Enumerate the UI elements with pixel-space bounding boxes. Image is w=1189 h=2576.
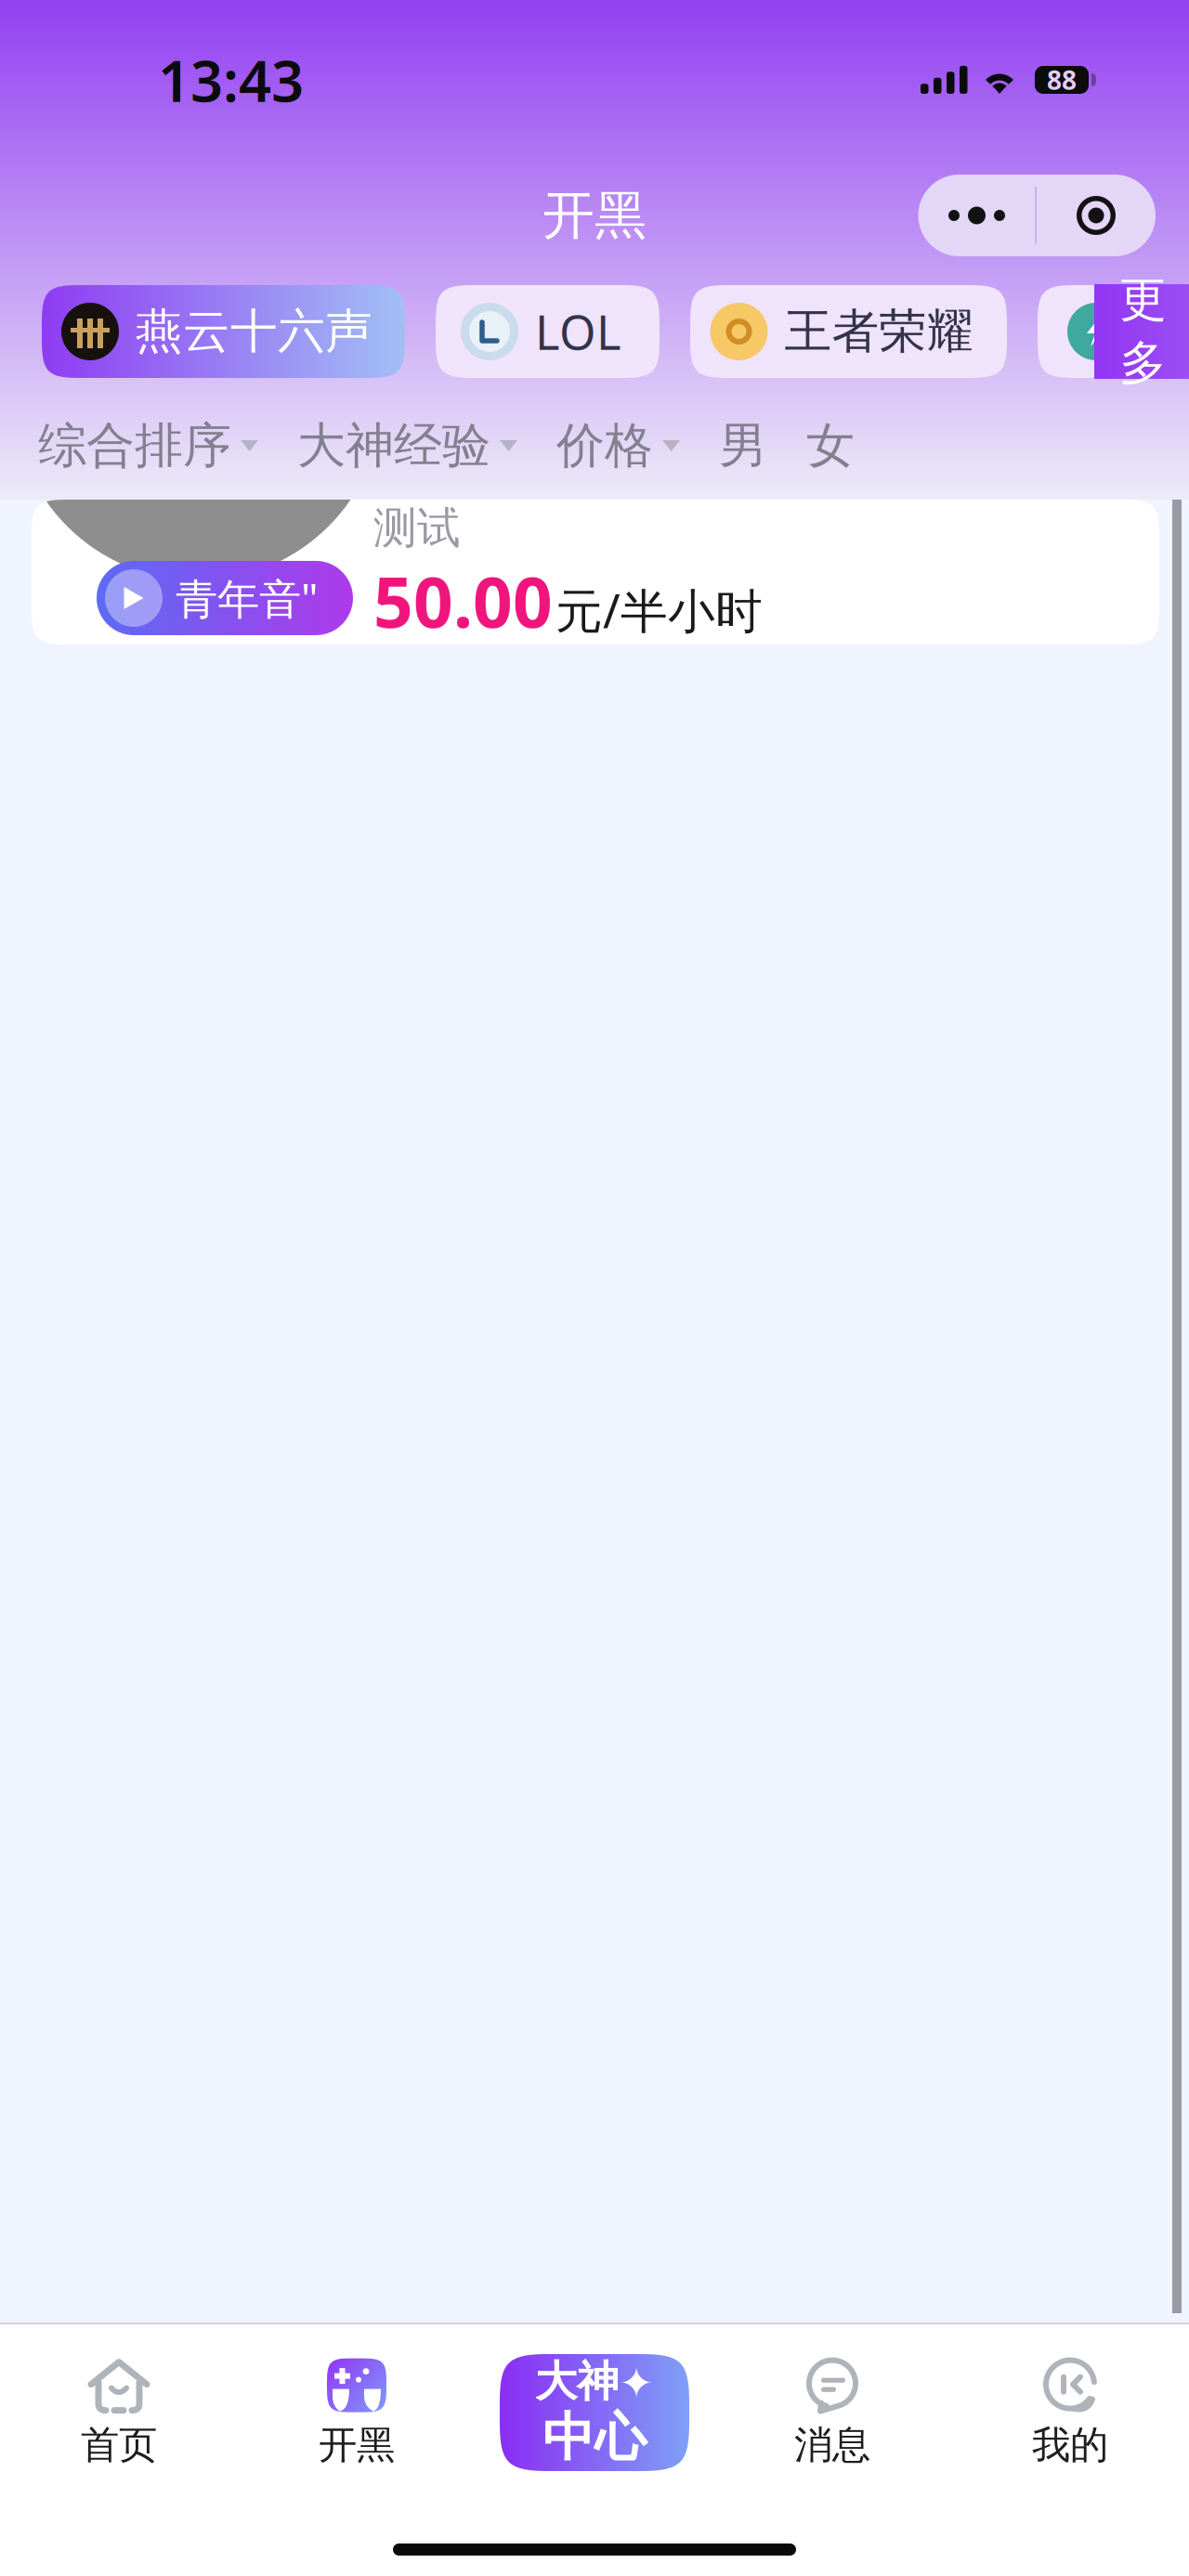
button[interactable] — [1038, 285, 1189, 378]
staticText: 消息 — [794, 2421, 870, 2469]
staticText: 青年音" — [176, 570, 318, 626]
staticText: 多 — [1119, 334, 1167, 392]
button[interactable]: 首页 — [0, 2343, 238, 2482]
staticText: 大神✦ — [535, 2356, 654, 2407]
button[interactable]: Close mini program — [1037, 175, 1156, 256]
button[interactable]: 价格 — [556, 418, 680, 474]
staticText: 大神经验 — [297, 416, 490, 475]
staticText: 我的 — [1032, 2421, 1108, 2469]
button[interactable]: 开黑 — [238, 2343, 476, 2482]
button[interactable]: 男 — [719, 418, 767, 474]
staticText: 中心 — [542, 2406, 647, 2469]
staticText: 综合排序 — [38, 416, 231, 475]
staticText: 测试 — [373, 501, 461, 555]
button[interactable]: 大神✦ — [476, 2343, 713, 2482]
staticText: 88 — [1047, 63, 1077, 97]
button[interactable]: 大神经验 — [297, 418, 517, 474]
staticText: 首页 — [81, 2421, 157, 2469]
staticText: 女 — [806, 416, 855, 475]
button[interactable]: 综合排序 — [38, 418, 258, 474]
staticText: 13:43 — [158, 42, 304, 118]
button[interactable]: LOL — [436, 285, 660, 378]
staticText: 王者荣耀 — [784, 303, 974, 360]
staticText: LOL — [535, 300, 621, 363]
button[interactable]: 更 — [1094, 284, 1189, 379]
button[interactable]: 我的 — [951, 2343, 1189, 2482]
button[interactable]: More options — [918, 175, 1035, 256]
staticText: 元/半小时 — [555, 579, 763, 641]
staticText: 50.00 — [373, 555, 553, 647]
button[interactable]: 女 — [806, 418, 855, 474]
staticText: 开黑 — [319, 2421, 395, 2469]
staticText: 男 — [719, 416, 767, 475]
button[interactable]: 消息 — [713, 2343, 951, 2482]
staticText: 更 — [1119, 271, 1167, 329]
button[interactable]: 燕云十六声 — [42, 285, 405, 378]
button[interactable]: 王者荣耀 — [690, 285, 1007, 378]
staticText: 燕云十六声 — [136, 303, 372, 360]
button[interactable]: 青年音" — [32, 500, 1159, 644]
staticText: 价格 — [556, 416, 653, 475]
staticText: 开黑 — [542, 183, 647, 247]
